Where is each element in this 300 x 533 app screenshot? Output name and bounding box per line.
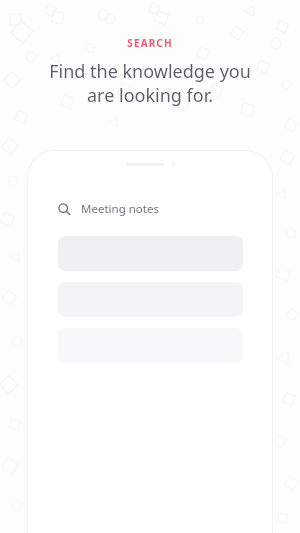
staticText: SEARCH xyxy=(127,36,173,50)
other: Search xyxy=(58,203,71,216)
staticText: Meeting notes xyxy=(81,201,159,217)
staticText: Find the knowledge you are looking for. xyxy=(18,59,282,107)
button[interactable]: Search field xyxy=(58,196,243,222)
